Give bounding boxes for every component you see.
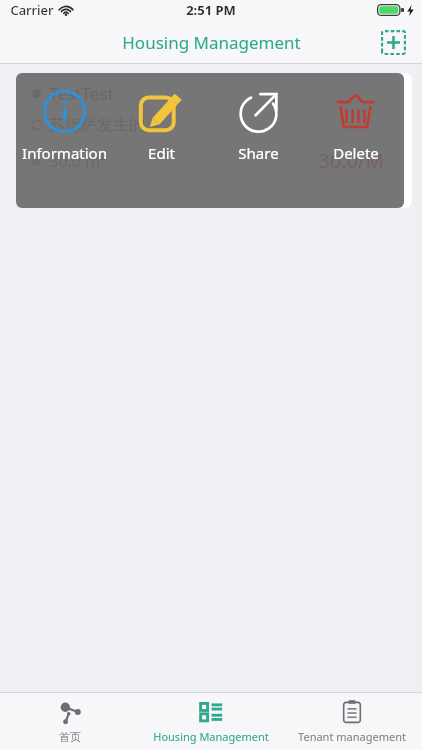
- staticText: 苏德萨发生的: [49, 115, 145, 135]
- staticText: 2:51 PM: [186, 1, 236, 19]
- staticText: 首页: [59, 730, 81, 744]
- staticText: Edit: [148, 143, 175, 163]
- button[interactable]: Information: [16, 73, 113, 208]
- button[interactable]: Add housing: [375, 24, 411, 60]
- staticText: Housing Management: [153, 729, 269, 744]
- staticText: Housing Management: [122, 31, 301, 54]
- button[interactable]: Delete: [307, 73, 404, 208]
- staticText: Delete: [333, 143, 379, 163]
- staticText: Share: [238, 143, 279, 163]
- staticText: TestTest: [49, 82, 114, 105]
- button[interactable]: Housing Management: [140, 693, 281, 750]
- staticText: Information: [22, 143, 107, 163]
- staticText: Tenant management: [298, 729, 406, 744]
- button[interactable]: Tenant management: [281, 693, 422, 750]
- button[interactable]: Edit: [113, 73, 210, 208]
- button[interactable]: 首页: [0, 693, 140, 750]
- staticText: 30.0 m²: [49, 150, 106, 172]
- staticText: 30.0/M: [318, 147, 384, 174]
- button[interactable]: Share: [210, 73, 307, 208]
- staticText: Carrier: [10, 1, 54, 19]
